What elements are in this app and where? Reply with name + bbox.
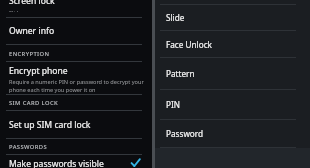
staticText: Require a numeric PIN or password to dec… <box>9 78 144 86</box>
button[interactable]: Face Unlock <box>155 31 310 57</box>
staticText: Owner info <box>9 25 55 37</box>
button[interactable]: Encrypt phone <box>0 62 152 94</box>
staticText: PASSWORDS <box>9 143 48 151</box>
button[interactable]: Make passwords visible <box>0 155 152 168</box>
staticText: Encrypt phone <box>9 65 68 77</box>
staticText: Pattern <box>166 68 195 79</box>
staticText: Screen lock <box>9 0 55 7</box>
staticText: Set up SIM card lock <box>9 119 91 131</box>
button[interactable]: Screen lock <box>0 0 152 17</box>
staticText: phone each time you power it on <box>9 86 96 94</box>
staticText: Make passwords visible <box>9 158 104 168</box>
button[interactable]: Set up SIM card lock <box>0 111 152 138</box>
button[interactable]: Owner info <box>0 18 152 44</box>
staticText: SIM CARD LOCK <box>9 99 59 107</box>
button[interactable]: Password <box>155 120 310 147</box>
staticText: Face Unlock <box>166 39 212 50</box>
button[interactable]: Pattern <box>155 58 310 89</box>
button[interactable]: Slide <box>155 5 310 30</box>
staticText: Password <box>166 128 204 139</box>
staticText: PIN <box>166 99 180 110</box>
button[interactable]: PIN <box>155 90 310 119</box>
staticText: Slide <box>166 12 185 23</box>
staticText: ENCRYPTION <box>9 50 50 58</box>
staticText: Slide <box>9 9 22 12</box>
